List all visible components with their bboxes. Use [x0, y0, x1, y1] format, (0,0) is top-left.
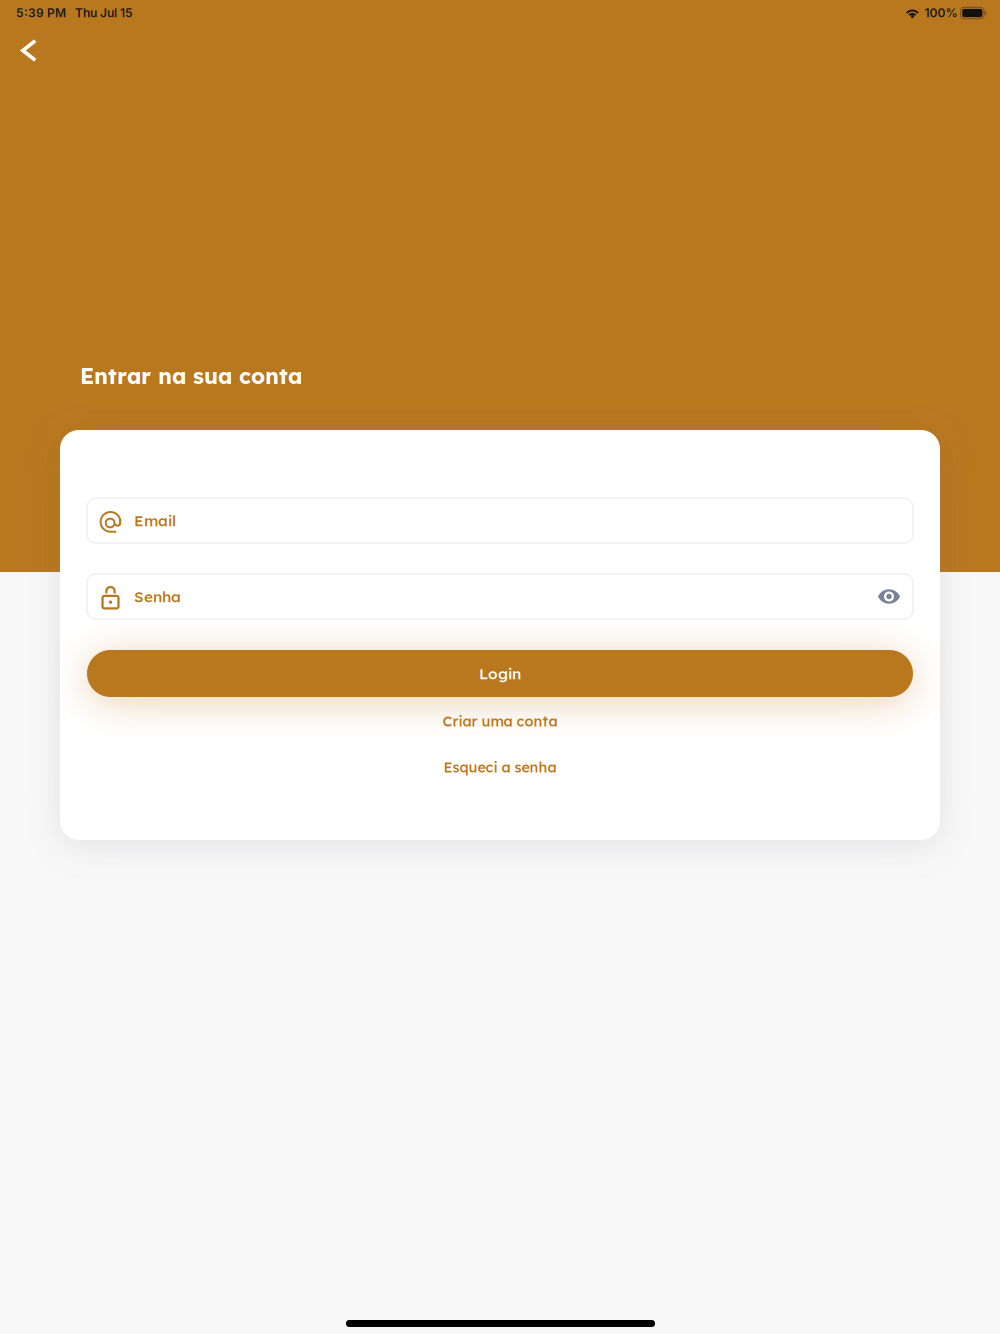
staticText: 5:39 PM — [16, 6, 66, 20]
button[interactable]: Back — [7, 25, 51, 76]
staticText: Esqueci a senha — [443, 758, 556, 776]
staticText: Entrar na sua conta — [80, 362, 302, 389]
staticText: 100% — [925, 6, 958, 20]
button[interactable]: Login — [87, 650, 913, 697]
staticText: Thu Jul 15 — [75, 6, 133, 20]
staticText: Login — [479, 664, 521, 683]
button[interactable]: Esqueci a senha — [87, 750, 913, 784]
staticText: Senha — [134, 587, 181, 606]
staticText: Email — [134, 511, 176, 530]
button[interactable]: Criar uma conta — [87, 704, 913, 738]
button[interactable]: Show password — [866, 579, 900, 614]
staticText: Criar uma conta — [442, 712, 557, 730]
